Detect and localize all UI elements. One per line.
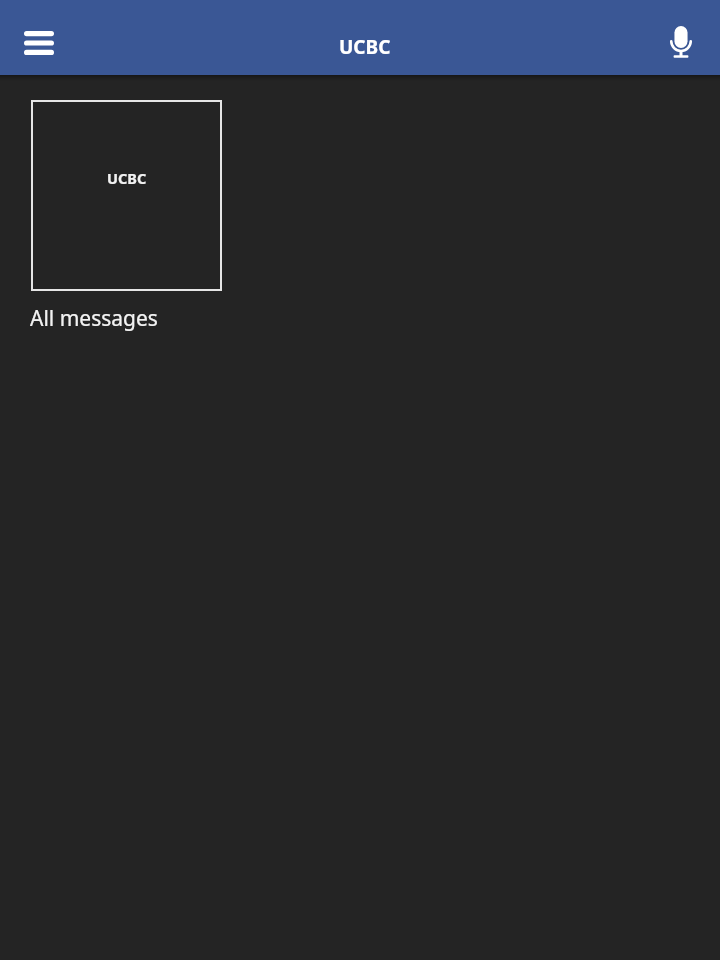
button[interactable]: Open navigation menu xyxy=(11,17,67,68)
staticText: All messages xyxy=(30,304,158,333)
button[interactable]: UCBC xyxy=(30,100,222,333)
button[interactable]: Voice search xyxy=(654,11,708,65)
staticText: UCBC xyxy=(107,168,147,188)
staticText: UCBC xyxy=(339,34,391,60)
